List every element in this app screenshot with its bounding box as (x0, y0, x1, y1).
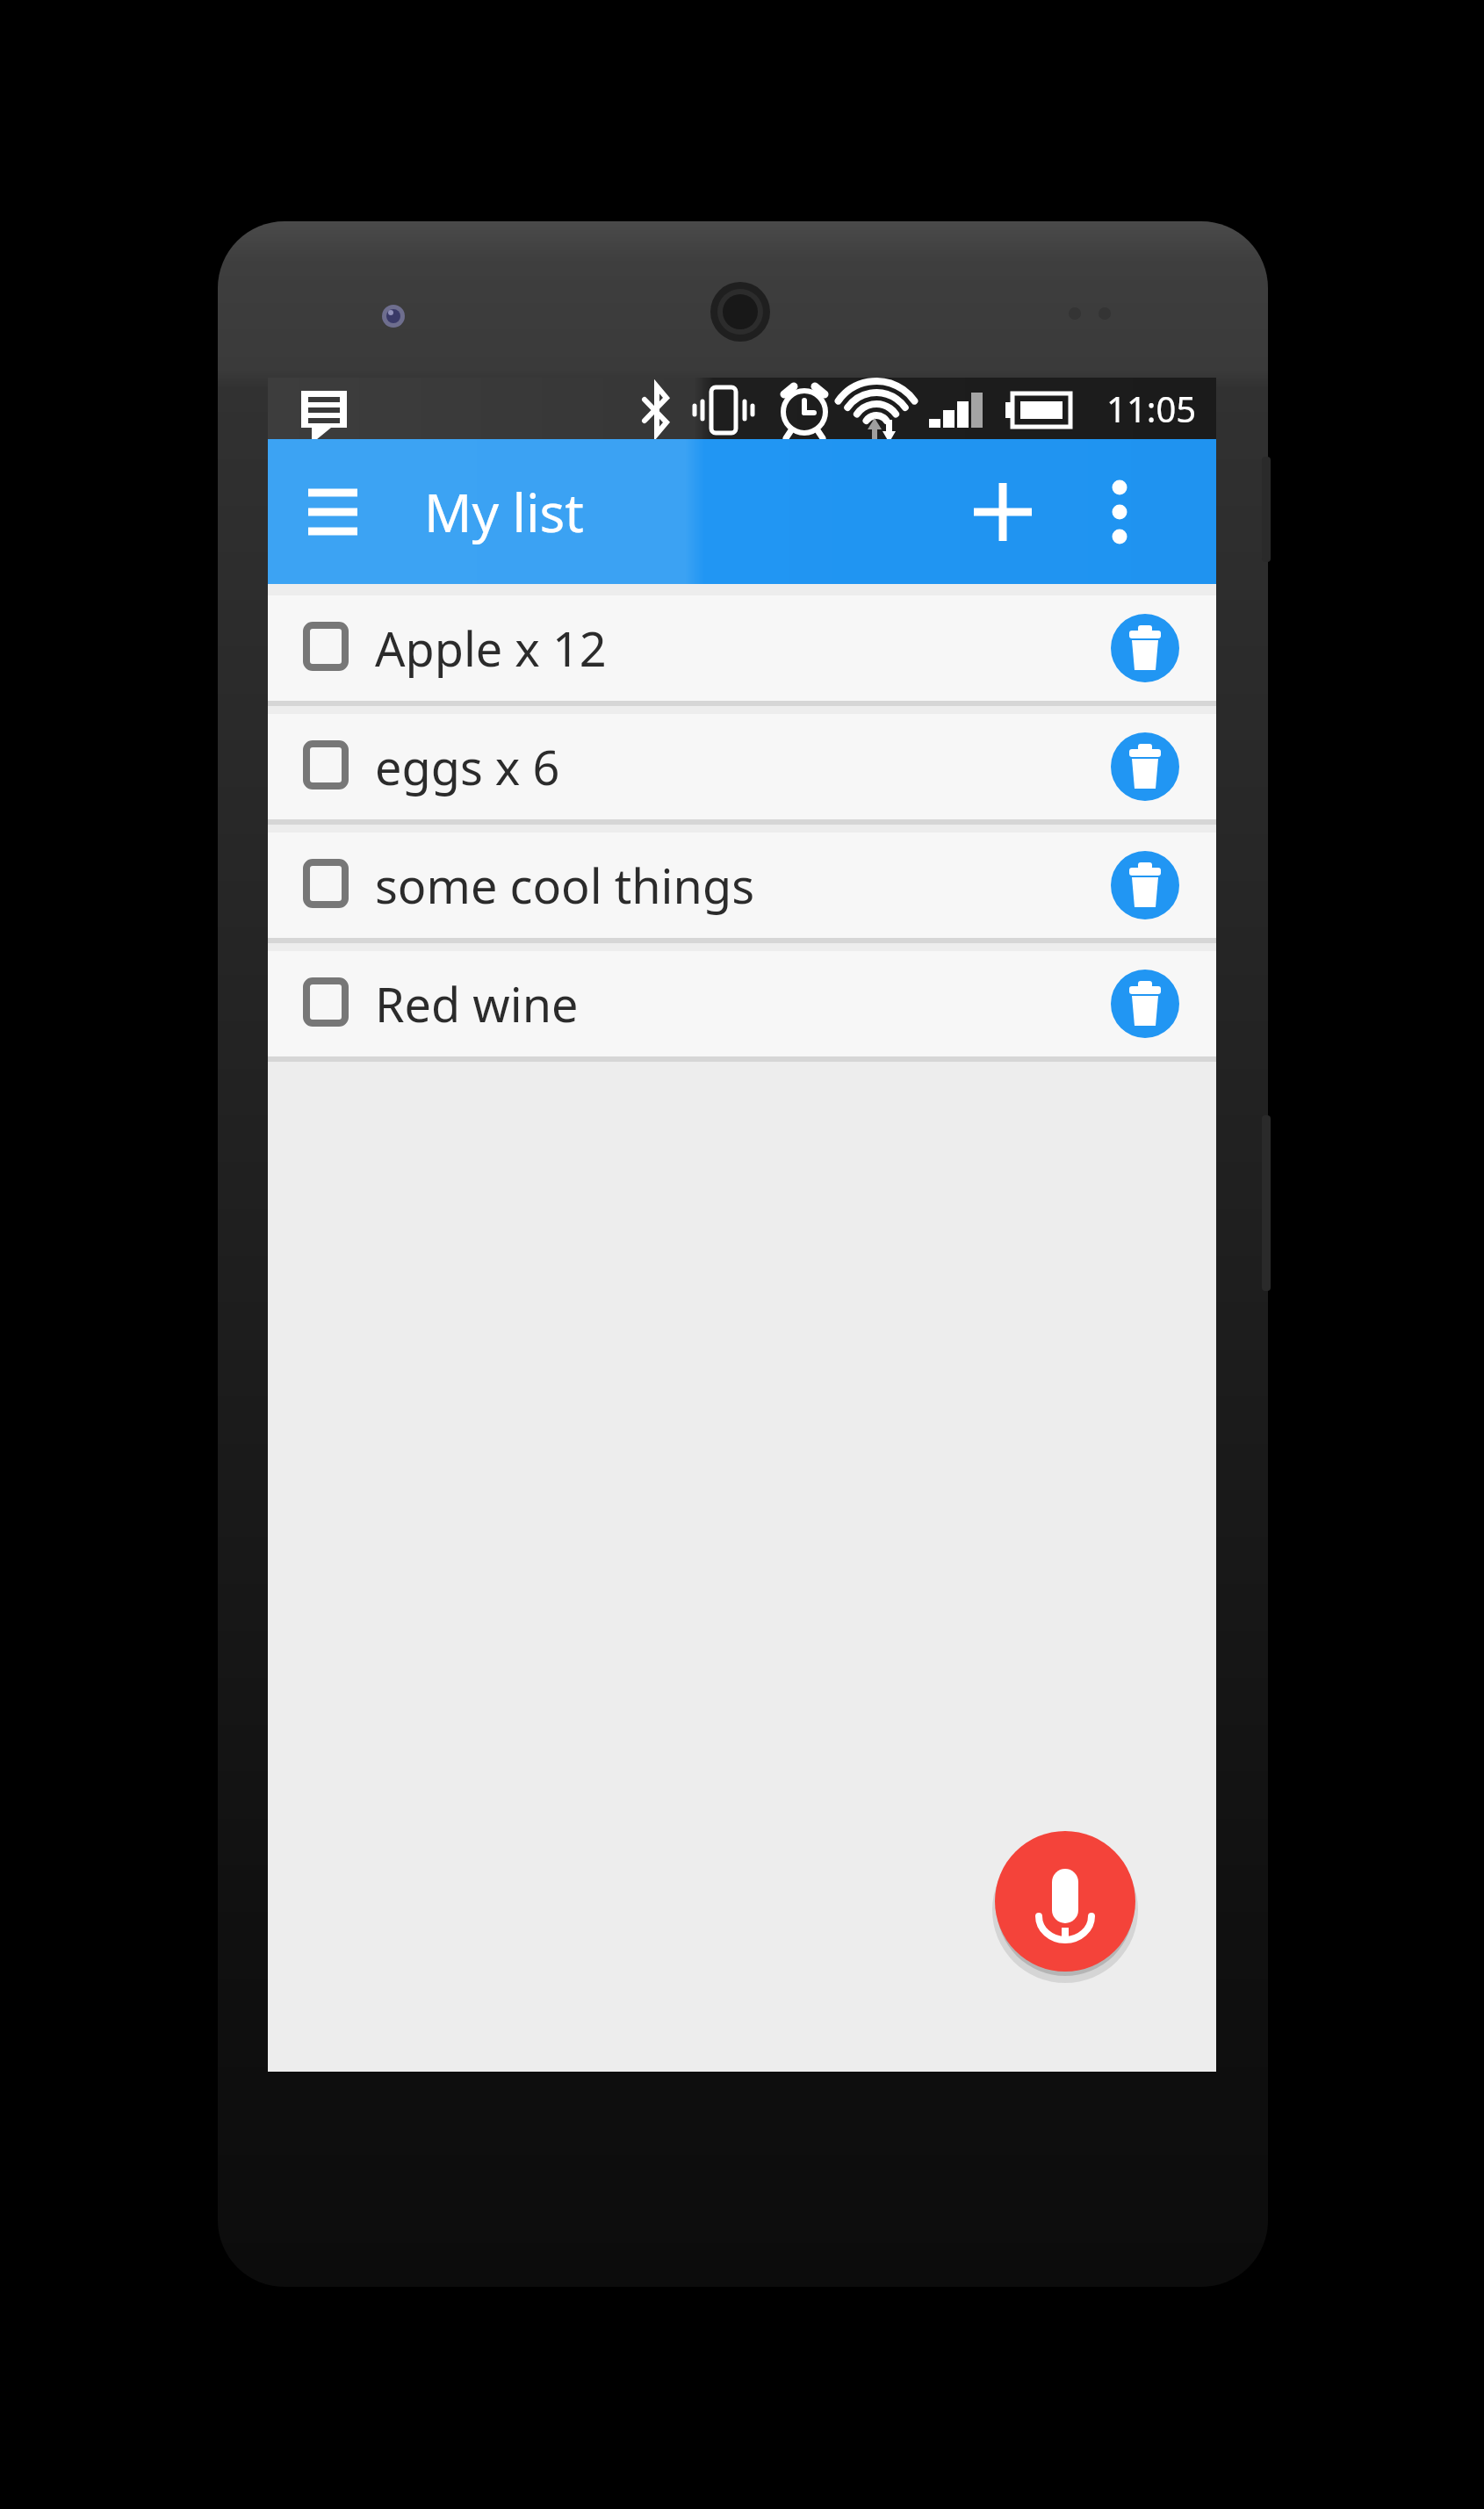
button[interactable]: Toggle Red wine (298, 976, 354, 1032)
button[interactable]: Voice input (995, 1831, 1135, 1972)
button[interactable]: Delete Red wine (1111, 970, 1179, 1038)
button[interactable]: More options (1076, 468, 1163, 556)
button[interactable]: Toggle some cool things (298, 857, 354, 913)
button[interactable]: Toggle eggs x 6 (298, 739, 354, 795)
button[interactable]: Delete Apple x 12 (1111, 614, 1179, 682)
staticText: Apple x 12 (375, 616, 1111, 681)
button[interactable]: Toggle Apple x 12 (298, 620, 354, 676)
button[interactable]: Toggle Red wine (268, 951, 1216, 1056)
button[interactable]: Add item (955, 464, 1051, 560)
button[interactable]: Delete some cool things (1111, 851, 1179, 919)
button[interactable]: Toggle Apple x 12 (268, 595, 1216, 701)
button[interactable]: Navigation menu (291, 470, 375, 554)
staticText: some cool things (375, 853, 1111, 918)
staticText: eggs x 6 (375, 734, 1111, 799)
staticText: 11:05 (1106, 385, 1197, 432)
staticText: Red wine (375, 971, 1111, 1036)
button[interactable]: Toggle some cool things (268, 833, 1216, 938)
button[interactable]: Toggle eggs x 6 (268, 714, 1216, 819)
staticText: My list (424, 476, 584, 548)
button[interactable]: Delete eggs x 6 (1111, 732, 1179, 801)
